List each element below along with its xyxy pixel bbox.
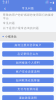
- staticText: ⌂: [49, 6, 52, 10]
- staticText: 退款政策说明: [19, 96, 37, 100]
- staticText: 常见问题: [3, 21, 15, 25]
- staticText: ‹: [4, 5, 6, 12]
- staticText: 尊敬的用户您好感谢您使用我们的服务平台: [3, 13, 54, 20]
- staticText: 如何修改个人资料: [16, 61, 40, 64]
- button[interactable]: Home: [47, 5, 54, 11]
- staticText: 以下是用户最常咨询的问题: [3, 26, 39, 30]
- button[interactable]: 支付与发票问题: [2, 86, 54, 92]
- staticText: 忘记密码怎么办: [17, 52, 38, 56]
- staticText: 小橘条款: [5, 35, 17, 38]
- staticText: 如何联系在线客服: [16, 79, 40, 82]
- staticText: 支付与发票问题: [17, 87, 38, 91]
- button[interactable]: 如何注册并登录账户: [2, 42, 54, 48]
- button[interactable]: 退款政策说明: [2, 95, 54, 100]
- staticText: ıll ᯤ ▮: [45, 1, 53, 4]
- staticText: 账户安全设置说明: [16, 70, 40, 73]
- staticText: 如何注册并登录账户: [14, 43, 41, 47]
- button[interactable]: Back: [1, 5, 8, 11]
- button[interactable]: 如何联系在线客服: [2, 78, 54, 83]
- button[interactable]: 账户安全设置说明: [2, 69, 54, 74]
- button[interactable]: 忘记密码怎么办: [2, 51, 54, 57]
- button[interactable]: 如何修改个人资料: [2, 60, 54, 65]
- staticText: 9:41: [2, 1, 9, 4]
- staticText: 常见问题: [22, 7, 34, 10]
